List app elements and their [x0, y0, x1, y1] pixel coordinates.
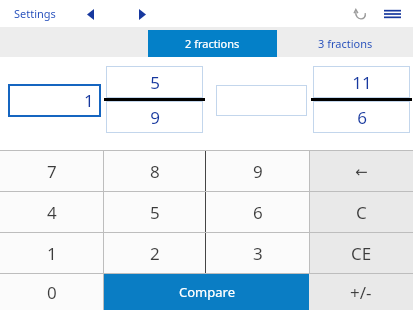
button[interactable]: 11: [313, 66, 410, 98]
button[interactable]: 9: [206, 151, 309, 191]
button[interactable]: 6: [206, 192, 309, 232]
staticText: 5: [150, 201, 160, 224]
staticText: 1: [47, 242, 57, 265]
staticText: 1: [84, 89, 94, 112]
button[interactable]: C: [310, 192, 413, 232]
button[interactable]: Compare: [104, 274, 309, 310]
staticText: 9: [253, 160, 263, 183]
button[interactable]: 4: [0, 192, 103, 232]
staticText: C: [356, 201, 367, 224]
button[interactable]: +/-: [309, 274, 413, 310]
button[interactable]: Undo: [349, 3, 371, 25]
button[interactable]: Previous: [80, 4, 100, 24]
staticText: 0: [47, 281, 57, 304]
button[interactable]: 7: [0, 151, 103, 191]
staticText: 6: [357, 106, 367, 129]
staticText: 3 fractions: [318, 36, 373, 51]
staticText: CE: [351, 242, 372, 265]
button[interactable]: 8: [104, 151, 205, 191]
button[interactable]: 1: [8, 84, 101, 117]
staticText: +/-: [350, 281, 372, 304]
staticText: 2: [150, 242, 160, 265]
button[interactable]: Next: [132, 4, 152, 24]
button[interactable]: 6: [313, 101, 410, 133]
button[interactable]: Settings: [14, 6, 56, 21]
staticText: 3: [253, 242, 263, 265]
staticText: 5: [150, 71, 160, 94]
button[interactable]: [216, 85, 307, 116]
staticText: 6: [253, 201, 263, 224]
button[interactable]: 3 fractions: [277, 30, 413, 57]
button[interactable]: Menu: [379, 1, 405, 27]
button[interactable]: 0: [0, 274, 103, 310]
staticText: 9: [150, 106, 160, 129]
button[interactable]: 1: [0, 233, 103, 273]
button[interactable]: 5: [104, 192, 205, 232]
staticText: 2 fractions: [185, 36, 240, 51]
staticText: 11: [352, 71, 372, 94]
button[interactable]: 9: [106, 101, 203, 133]
staticText: ←: [355, 163, 368, 180]
button[interactable]: 3: [206, 233, 309, 273]
button[interactable]: 2 fractions: [148, 30, 277, 57]
button[interactable]: ←: [310, 151, 413, 191]
staticText: 4: [47, 201, 57, 224]
button[interactable]: CE: [310, 233, 413, 273]
staticText: 8: [150, 160, 160, 183]
staticText: Compare: [179, 283, 235, 301]
staticText: 7: [47, 160, 57, 183]
button[interactable]: 2: [104, 233, 205, 273]
button[interactable]: 5: [106, 66, 203, 98]
staticText: Settings: [14, 6, 56, 21]
